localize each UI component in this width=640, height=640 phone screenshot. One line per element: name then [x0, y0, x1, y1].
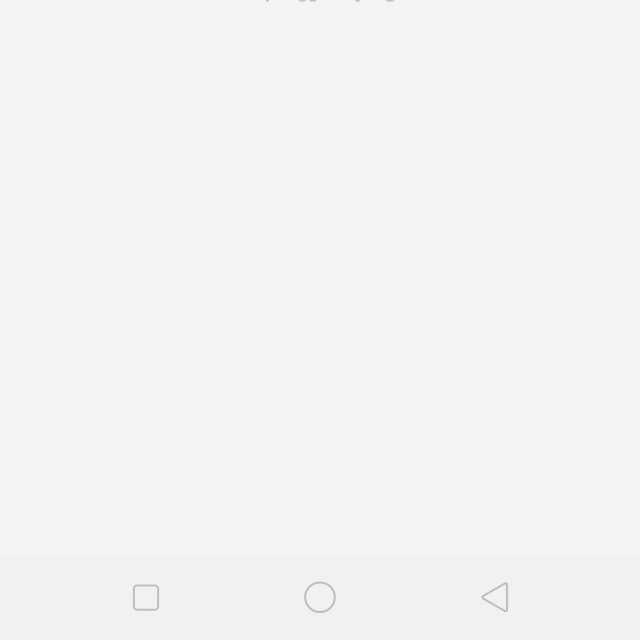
button[interactable]: Recent apps	[118, 570, 174, 626]
button[interactable]: Home	[292, 570, 348, 626]
button[interactable]: Back	[466, 570, 522, 626]
